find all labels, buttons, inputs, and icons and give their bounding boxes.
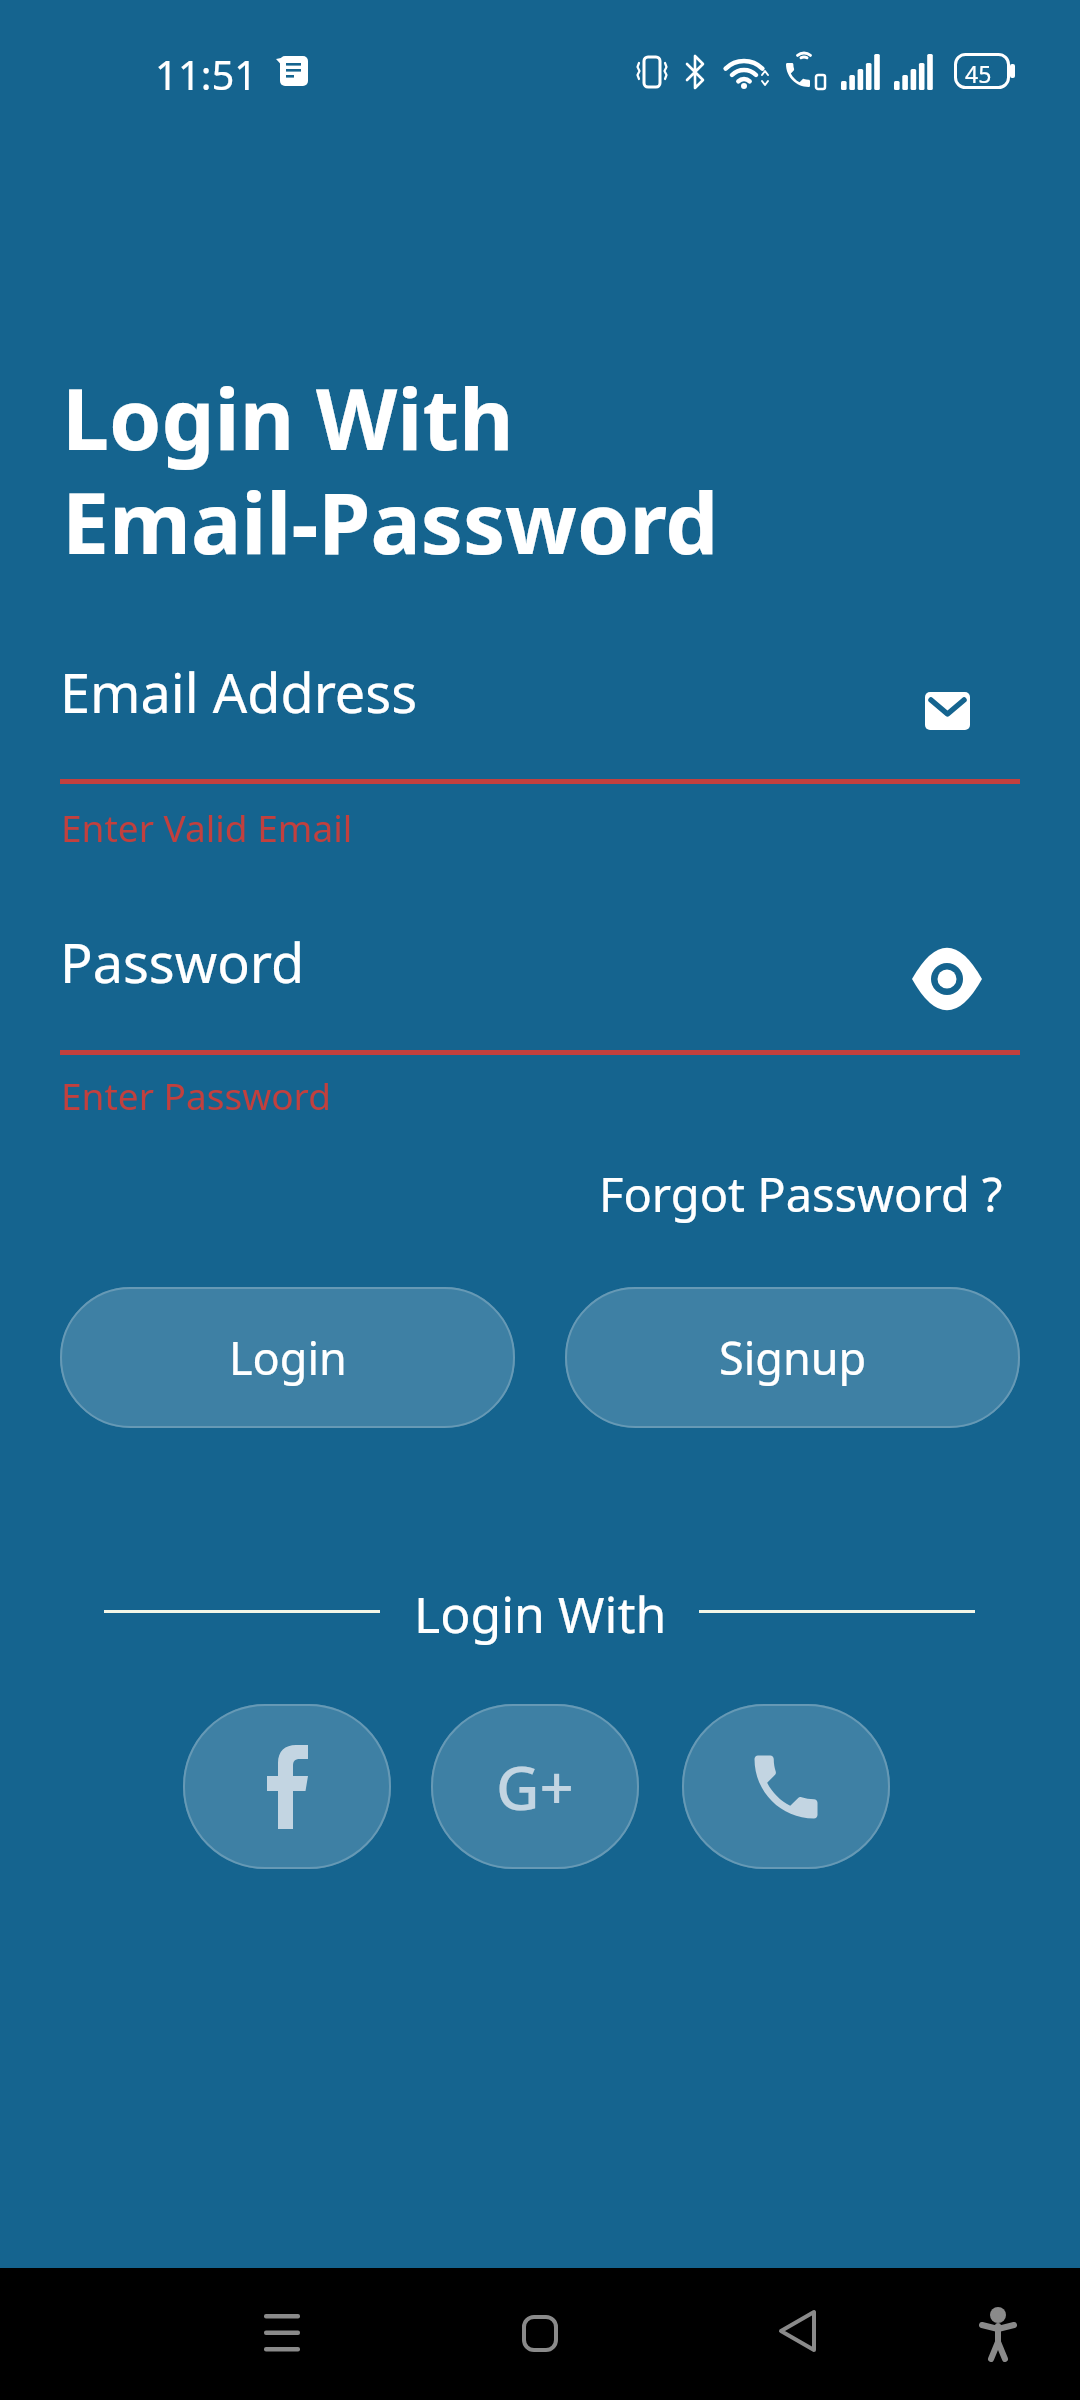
staticText: G+ <box>496 1746 574 1828</box>
button[interactable] <box>522 2315 558 2352</box>
staticText: 11:51 <box>155 47 258 101</box>
button[interactable]: Signup <box>565 1287 1020 1428</box>
staticText: Login With Email-Password <box>62 360 719 578</box>
button[interactable] <box>264 2313 300 2353</box>
staticText: Email Address <box>60 655 418 729</box>
button[interactable]: Login <box>60 1287 515 1428</box>
staticText: Login <box>229 1327 347 1388</box>
staticText: Enter Valid Email <box>61 802 353 852</box>
staticText: Signup <box>719 1327 867 1388</box>
button[interactable] <box>978 2306 1018 2360</box>
button[interactable] <box>682 1704 890 1869</box>
staticText: Password <box>60 925 305 999</box>
staticText: 45 <box>965 58 992 89</box>
button[interactable] <box>264 1745 310 1829</box>
staticText: Login With <box>414 1580 667 1648</box>
button[interactable] <box>183 1704 391 1869</box>
staticText: Enter Password <box>61 1070 331 1120</box>
button[interactable]: Forgot Password ? <box>599 1162 1003 1226</box>
button[interactable]: G+ <box>431 1704 639 1869</box>
button[interactable] <box>779 2310 817 2352</box>
